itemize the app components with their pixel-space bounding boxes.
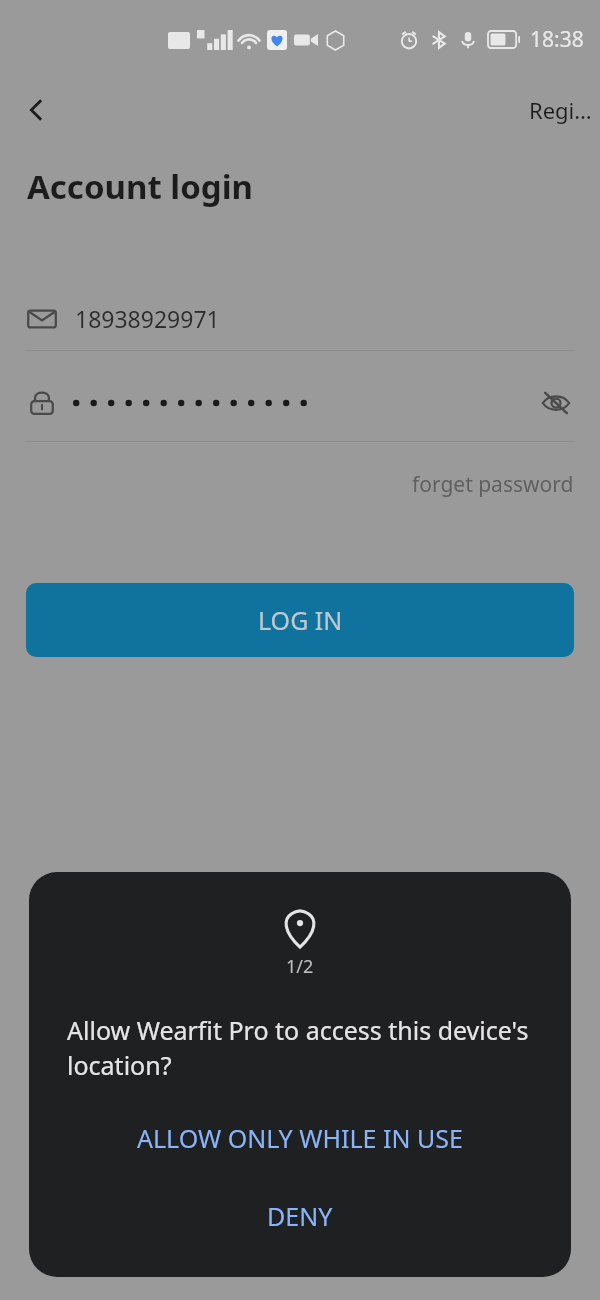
- staticText: 1/2: [286, 954, 314, 979]
- staticText: ALLOW ONLY WHILE IN USE: [137, 1121, 463, 1155]
- staticText: Allow Wearfit Pro to access this device'…: [67, 1013, 533, 1083]
- staticText: 18:38: [530, 25, 584, 54]
- staticText: forget password: [412, 470, 574, 499]
- button[interactable]: Regi…: [521, 87, 600, 133]
- staticText: LOG IN: [258, 603, 343, 637]
- button[interactable]: LOG IN: [26, 583, 574, 657]
- staticText: DENY: [267, 1199, 333, 1233]
- button[interactable]: Show password: [534, 381, 578, 425]
- staticText: Regi…: [529, 95, 592, 125]
- staticText: Account login: [27, 164, 253, 209]
- button[interactable]: ALLOW ONLY WHILE IN USE: [29, 1107, 571, 1169]
- button[interactable]: Back: [12, 86, 60, 134]
- button[interactable]: DENY: [29, 1185, 571, 1247]
- button[interactable]: 18938929971: [0, 303, 600, 334]
- button[interactable]: forget password: [386, 464, 600, 505]
- staticText: 18938929971: [75, 303, 220, 334]
